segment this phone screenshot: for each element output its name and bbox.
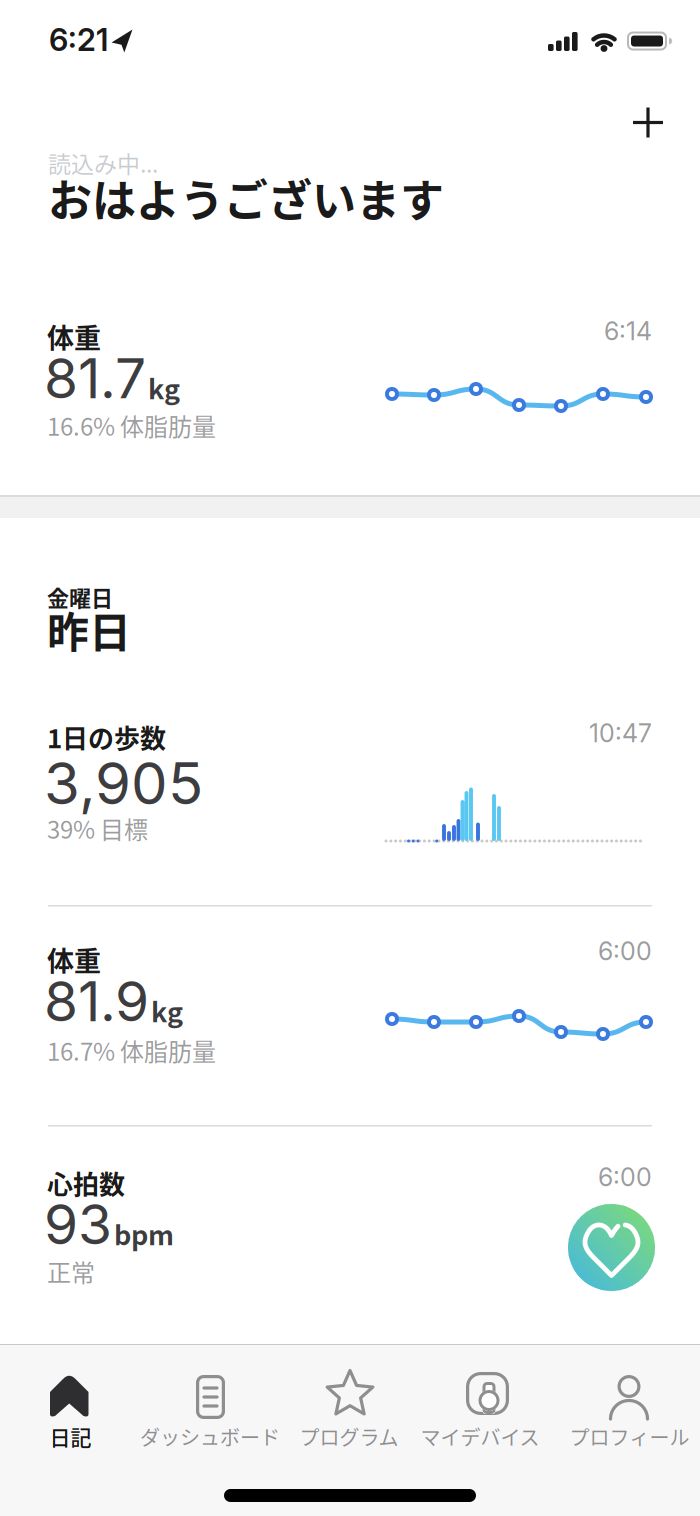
staticText: 3,905 [44,748,203,818]
staticText: 6:00 [598,936,652,966]
staticText: 昨日 [47,599,131,660]
staticText: kg [148,368,180,407]
staticText: 6:00 [598,1162,652,1192]
staticText: 正常 [47,1254,95,1289]
staticText: プログラム [299,1422,398,1451]
staticText: おはようございます [48,166,444,230]
staticText: ダッシュボード [140,1422,280,1451]
staticText: 81.9 [44,968,149,1034]
staticText: 金曜日 [47,581,113,613]
staticText: 81.7 [44,345,146,411]
staticText: bpm [114,1214,174,1253]
staticText: 16.7% 体脂肪量 [47,1033,216,1068]
staticText: マイデバイス [420,1422,539,1451]
staticText: 読込み中... [48,146,158,179]
staticText: 日記 [49,1421,91,1451]
staticText: 39% 目標 [47,811,148,846]
staticText: 16.6% 体脂肪量 [47,408,216,443]
staticText: 1日の歩数 [47,718,166,756]
staticText: 6:21 [49,21,108,58]
staticText: 体重 [47,317,101,356]
staticText: kg [151,991,183,1030]
staticText: 6:14 [604,316,652,346]
staticText: プロフィール [569,1422,689,1451]
staticText: 10:47 [589,718,652,748]
staticText: 93 [44,1191,112,1257]
staticText: 体重 [47,940,101,979]
staticText: 心拍数 [47,1164,125,1202]
